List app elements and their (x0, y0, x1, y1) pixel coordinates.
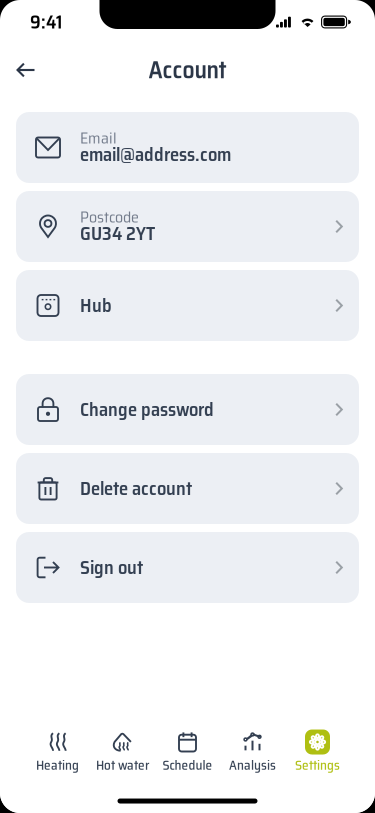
staticText: Postcode (80, 204, 139, 230)
staticText: Email (80, 125, 117, 151)
staticText: Analysis (229, 754, 276, 775)
button[interactable]: Postcode (16, 191, 359, 262)
button[interactable]: Hot water (90, 728, 155, 773)
staticText: Schedule (162, 754, 212, 775)
staticText: GU34 2YT (80, 219, 155, 248)
staticText: Delete account (80, 474, 192, 503)
staticText: 9:41 (30, 7, 62, 37)
button[interactable]: Delete account (16, 453, 359, 524)
staticText: Hot water (96, 754, 149, 775)
staticText: Hub (80, 291, 112, 320)
button[interactable]: Email (16, 112, 359, 183)
staticText: Sign out (80, 553, 143, 582)
button[interactable]: Back (4, 48, 48, 92)
button[interactable]: Heating (25, 728, 90, 773)
button[interactable]: Hub (16, 270, 359, 341)
button[interactable]: Schedule (155, 728, 220, 773)
staticText: Account (148, 51, 226, 89)
button[interactable]: Change password (16, 374, 359, 445)
staticText: email@address.com (80, 140, 231, 169)
button[interactable]: Analysis (220, 728, 285, 773)
staticText: Settings (295, 754, 340, 775)
staticText: Heating (36, 754, 79, 775)
button[interactable]: Sign out (16, 532, 359, 603)
button[interactable]: Settings (285, 728, 350, 773)
staticText: Change password (80, 395, 214, 424)
